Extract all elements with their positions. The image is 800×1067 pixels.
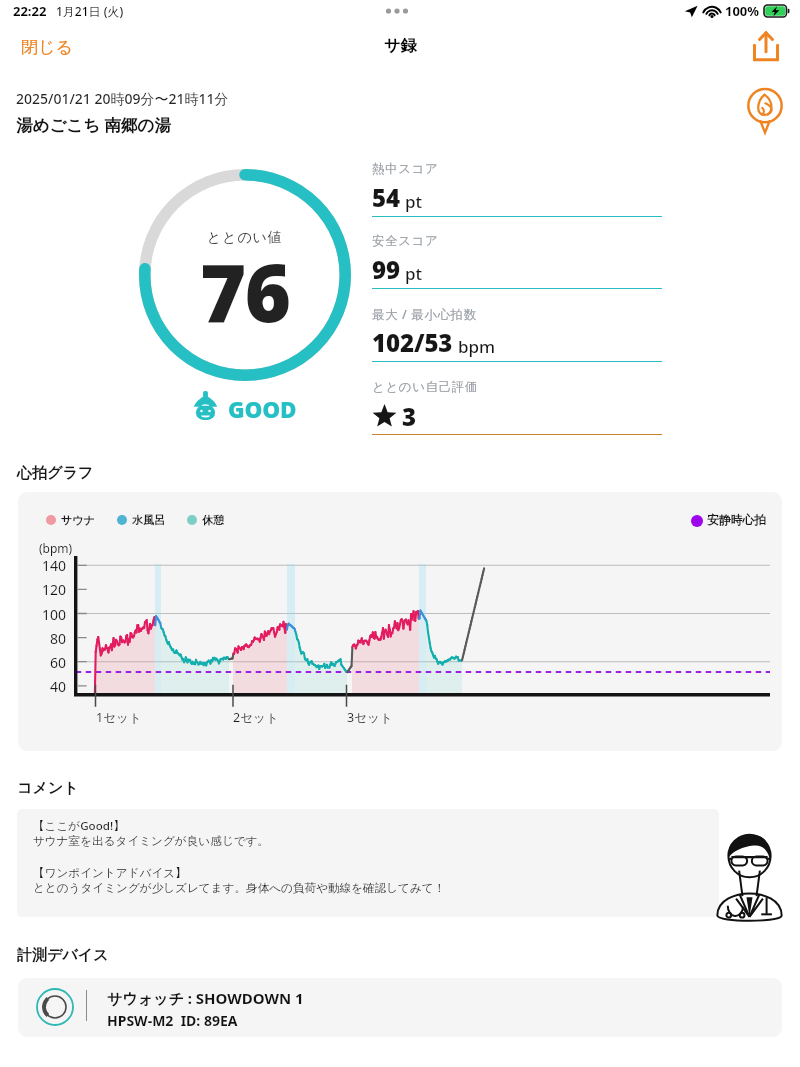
- staticText: 水風呂: [132, 513, 165, 527]
- staticText: コメント: [17, 779, 79, 798]
- staticText: 1セット: [96, 709, 142, 726]
- staticText: 22:22: [13, 2, 47, 20]
- staticText: 3セット: [347, 709, 393, 726]
- staticText: ととのい自己評価: [372, 379, 478, 395]
- staticText: サウナ: [61, 513, 95, 527]
- staticText: 140: [18, 556, 66, 575]
- staticText: GOOD: [228, 394, 297, 425]
- staticText: 熱中スコア: [372, 161, 439, 177]
- staticText: 計測デバイス: [17, 946, 109, 965]
- staticText: 湯めごこち 南郷の湯: [16, 113, 171, 136]
- staticText: サウナ室を出るタイミングが良い感じです。: [33, 834, 269, 849]
- staticText: 76: [200, 238, 290, 346]
- staticText: 2025/01/21 20時09分〜21時11分: [16, 89, 229, 108]
- staticText: 60: [18, 653, 66, 672]
- staticText: 1月21日 (火): [56, 3, 124, 19]
- staticText: (bpm): [39, 540, 73, 556]
- staticText: 2セット: [233, 709, 279, 726]
- staticText: 最大 / 最小心拍数: [372, 306, 477, 323]
- staticText: bpm: [458, 335, 496, 358]
- staticText: pt: [405, 190, 423, 213]
- staticText: 102/53: [372, 326, 453, 359]
- staticText: 安全スコア: [372, 233, 439, 249]
- button[interactable]: 閉じる: [11, 32, 83, 63]
- staticText: サウォッチ : SHOWDOWN 1: [107, 988, 304, 1008]
- button[interactable]: サウォッチ : SHOWDOWN 1: [18, 978, 782, 1037]
- staticText: pt: [405, 262, 423, 285]
- staticText: 100: [18, 605, 66, 624]
- button[interactable]: Sauna spot: [742, 83, 788, 129]
- staticText: 100%: [725, 2, 760, 20]
- staticText: 心拍グラフ: [17, 464, 94, 483]
- staticText: 54: [372, 181, 400, 214]
- staticText: 40: [18, 677, 66, 696]
- staticText: ととのうタイミングが少しズレてます。身体への負荷や動線を確認してみて！: [33, 881, 446, 896]
- staticText: 99: [372, 253, 400, 286]
- staticText: サ録: [384, 36, 417, 56]
- staticText: 【ワンポイントアドバイス】: [33, 866, 187, 881]
- staticText: 閉じる: [21, 37, 73, 58]
- staticText: ととのい値: [207, 229, 283, 247]
- staticText: 休憩: [202, 513, 224, 527]
- staticText: 120: [18, 580, 66, 599]
- staticText: HPSW-M2 ID: 89EA: [107, 1011, 238, 1030]
- button[interactable]: サ録: [374, 32, 427, 60]
- staticText: 【ここがGood!】: [33, 818, 125, 834]
- button[interactable]: Share: [748, 28, 784, 64]
- staticText: 安静時心拍: [707, 513, 766, 528]
- staticText: 80: [18, 629, 66, 648]
- staticText: 3: [402, 400, 417, 433]
